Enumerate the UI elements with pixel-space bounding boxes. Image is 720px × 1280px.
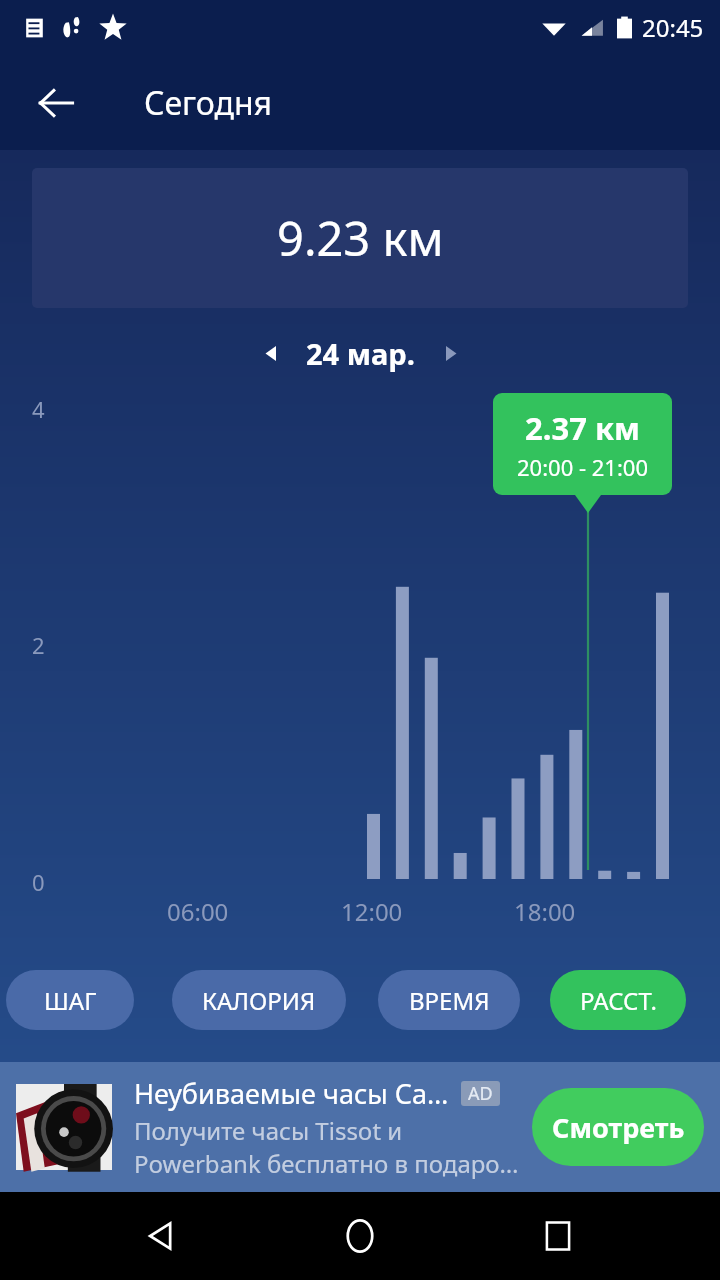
button[interactable]: Next day bbox=[427, 330, 473, 376]
button[interactable]: Неубиваемые часы Са… bbox=[0, 1062, 720, 1192]
staticText: 4 bbox=[32, 394, 45, 424]
staticText: Получите часы Tissot и Powerbank бесплат… bbox=[134, 1114, 519, 1180]
staticText: 20:45 bbox=[642, 11, 704, 44]
button[interactable]: Previous day bbox=[248, 330, 294, 376]
staticText: РАССТ. bbox=[580, 984, 657, 1017]
staticText: ШАГ bbox=[44, 984, 97, 1017]
staticText: 06:00 bbox=[167, 895, 229, 928]
button[interactable]: Recents bbox=[522, 1200, 594, 1272]
button[interactable]: Home bbox=[324, 1200, 396, 1272]
button[interactable]: Смотреть bbox=[532, 1088, 704, 1166]
button[interactable]: ВРЕМЯ bbox=[378, 970, 520, 1030]
staticText: 24 мар. bbox=[306, 334, 415, 373]
button[interactable]: 9.23 км bbox=[32, 168, 688, 308]
staticText: ВРЕМЯ bbox=[409, 984, 490, 1017]
button[interactable]: Back bbox=[126, 1200, 198, 1272]
staticText: Сегодня bbox=[144, 81, 273, 125]
staticText: 0 bbox=[32, 867, 45, 897]
button[interactable]: 2.37 км bbox=[493, 393, 672, 495]
staticText: Неубиваемые часы Са… bbox=[134, 1075, 449, 1112]
button[interactable]: РАССТ. bbox=[550, 970, 686, 1030]
button[interactable]: Back bbox=[24, 71, 88, 135]
staticText: 2 bbox=[32, 630, 45, 660]
staticText: AD bbox=[468, 1081, 493, 1106]
staticText: 18:00 bbox=[514, 895, 576, 928]
staticText: 12:00 bbox=[341, 895, 403, 928]
staticText: 9.23 км bbox=[277, 206, 444, 270]
staticText: Смотреть bbox=[552, 1109, 685, 1146]
button[interactable]: КАЛОРИЯ bbox=[172, 970, 346, 1030]
staticText: КАЛОРИЯ bbox=[202, 984, 316, 1017]
staticText: 20:00 - 21:00 bbox=[517, 452, 648, 482]
staticText: 2.37 км bbox=[525, 407, 641, 449]
button[interactable]: ШАГ bbox=[6, 970, 134, 1030]
